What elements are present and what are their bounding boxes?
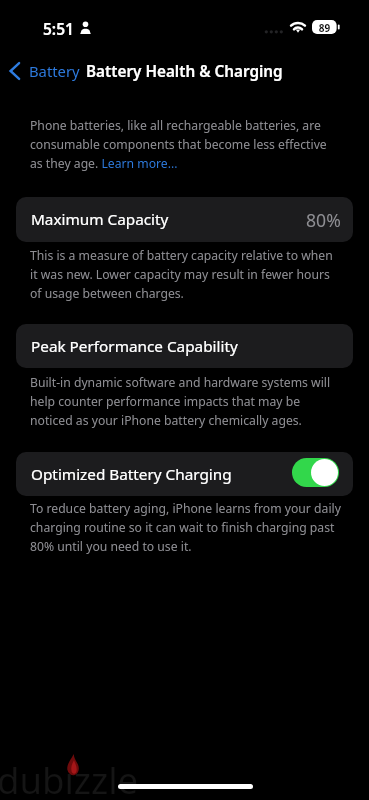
button[interactable]: Battery <box>0 56 88 86</box>
button[interactable]: Maximum Capacity <box>16 197 353 242</box>
button[interactable]: Optimized Battery Charging <box>16 452 353 496</box>
staticText: Built-in dynamic software and hardware s… <box>30 374 331 428</box>
button[interactable]: Peak Performance Capability <box>16 324 353 368</box>
button[interactable]: Learn more about battery health <box>100 155 178 171</box>
staticText: Battery Health & Charging <box>86 61 283 82</box>
button[interactable]: Optimized Battery Charging toggle <box>292 458 339 487</box>
staticText: 89 <box>312 21 337 35</box>
staticText: This is a measure of battery capacity re… <box>30 247 333 301</box>
staticText: Peak Performance Capability <box>31 336 238 357</box>
staticText: 80% <box>306 208 341 232</box>
staticText: dubizzle <box>0 755 139 800</box>
staticText: Battery <box>29 61 80 81</box>
staticText: 5:51 <box>43 18 74 39</box>
staticText: Optimized Battery Charging <box>31 464 232 485</box>
staticText: Phone batteries, like all rechargeable b… <box>30 117 327 171</box>
staticText: Maximum Capacity <box>31 209 169 230</box>
staticText: To reduce battery aging, iPhone learns f… <box>30 500 341 554</box>
